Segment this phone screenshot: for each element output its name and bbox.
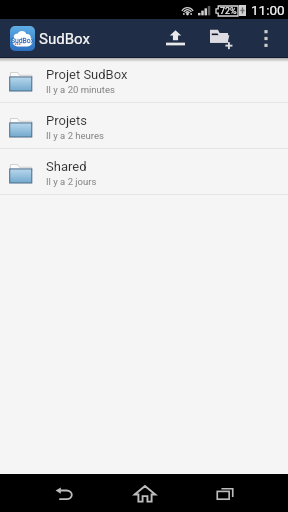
- staticText: Projets: [46, 113, 87, 128]
- button[interactable]: Home: [128, 474, 162, 512]
- button[interactable]: Upload: [154, 19, 197, 57]
- button[interactable]: Shared: [0, 149, 288, 194]
- staticText: Il y a 2 heures: [46, 130, 104, 141]
- staticText: Shared: [46, 159, 87, 174]
- button[interactable]: Projet SudBox: [0, 57, 288, 102]
- staticText: 72%: [220, 6, 237, 16]
- staticText: Projet SudBox: [46, 67, 128, 82]
- button[interactable]: Back: [0, 474, 128, 512]
- button[interactable]: Recent apps: [162, 474, 288, 512]
- staticText: Il y a 20 minutes: [46, 84, 115, 95]
- button[interactable]: More options: [244, 19, 288, 57]
- staticText: 11:00: [251, 2, 285, 18]
- staticText: SudBox: [11, 37, 35, 45]
- button[interactable]: New folder: [197, 19, 244, 57]
- button[interactable]: SudBox: [0, 26, 98, 51]
- staticText: SudBox: [39, 30, 90, 48]
- button[interactable]: Projets: [0, 103, 288, 148]
- staticText: Il y a 2 jours: [46, 176, 97, 187]
